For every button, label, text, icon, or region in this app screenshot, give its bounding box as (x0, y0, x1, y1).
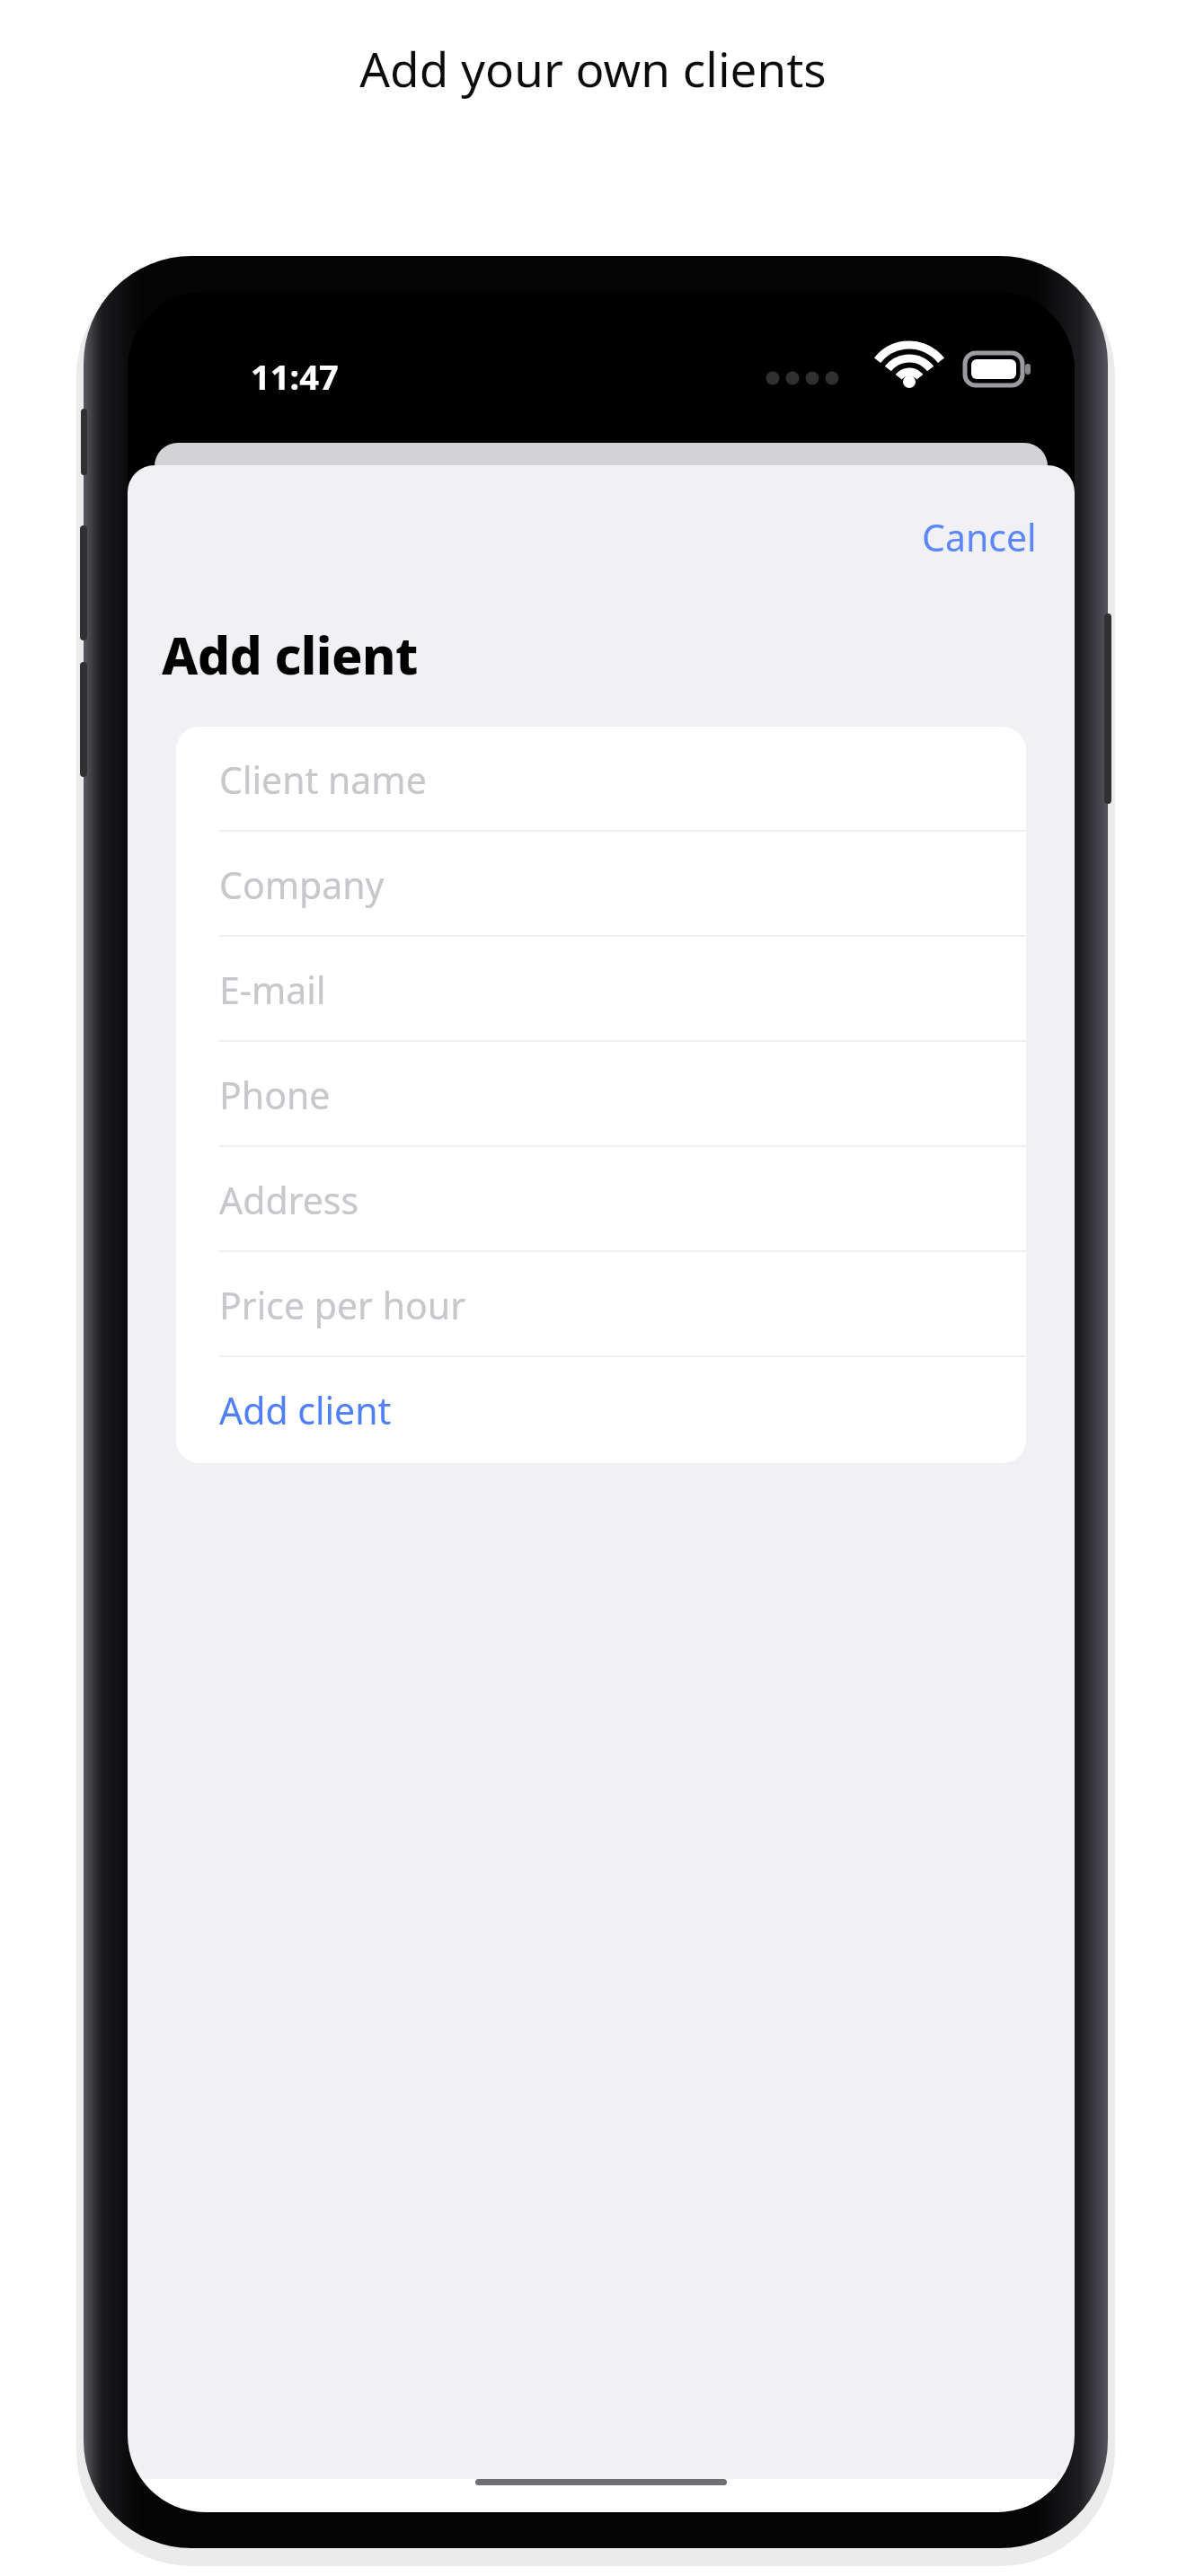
staticText: Phone (219, 1070, 331, 1120)
staticText: Price per hour (219, 1280, 466, 1330)
staticText: 11:47 (251, 353, 339, 400)
staticText: Add client (162, 620, 418, 690)
button[interactable]: E-mail (176, 937, 1026, 1042)
button[interactable]: Cancel (909, 505, 1049, 569)
staticText: Cancel (922, 512, 1037, 562)
staticText: Address (219, 1175, 359, 1225)
staticText: Add your own clients (0, 36, 1186, 101)
button[interactable]: Phone (176, 1042, 1026, 1147)
button[interactable]: Company (176, 832, 1026, 937)
button[interactable]: Add client (176, 1357, 1026, 1463)
staticText: Client name (219, 754, 427, 805)
staticText: Company (219, 860, 385, 910)
button[interactable]: Price per hour (176, 1252, 1026, 1357)
staticText: Add client (219, 1385, 392, 1435)
button[interactable]: Address (176, 1147, 1026, 1252)
staticText: E-mail (219, 965, 326, 1015)
button[interactable]: Client name (176, 727, 1026, 832)
other: Home indicator (475, 2479, 727, 2485)
